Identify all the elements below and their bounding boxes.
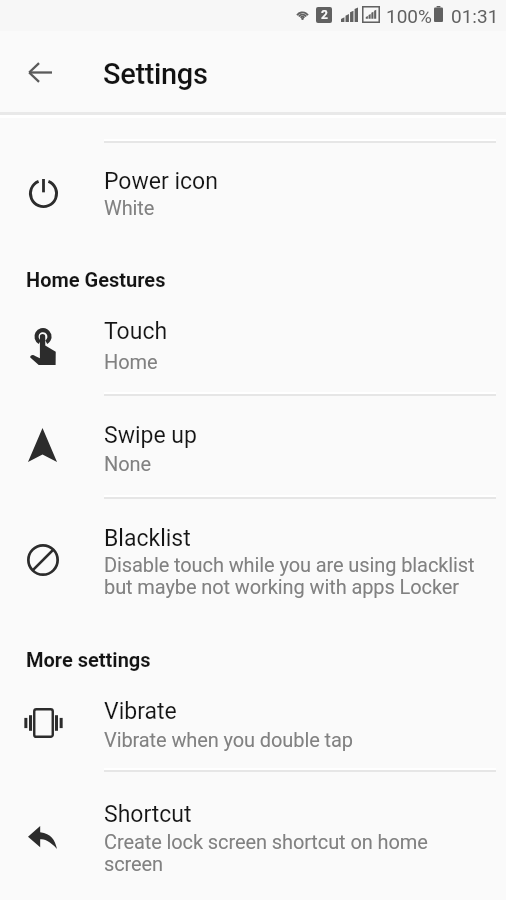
staticText: 100% <box>386 5 432 27</box>
button[interactable] <box>0 770 506 890</box>
staticText: White <box>104 196 484 219</box>
staticText: Home Gestures <box>26 268 166 291</box>
staticText: 01:31 <box>451 5 499 27</box>
staticText: More settings <box>26 648 151 671</box>
staticText: Power icon <box>104 168 218 195</box>
button[interactable] <box>0 680 506 769</box>
staticText: Disable touch while you are using blackl… <box>104 553 484 599</box>
staticText: Create lock screen shortcut on home scre… <box>104 830 484 876</box>
staticText: 2 <box>321 8 328 22</box>
staticText: Settings <box>103 57 208 91</box>
staticText: Touch <box>104 318 168 345</box>
button[interactable] <box>0 393 506 499</box>
staticText: Home <box>104 350 484 373</box>
staticText: Blacklist <box>104 525 191 552</box>
staticText: Vibrate <box>104 698 177 725</box>
staticText: Shortcut <box>104 801 192 828</box>
button[interactable] <box>0 141 506 240</box>
button[interactable] <box>0 300 506 392</box>
staticText: None <box>104 452 484 475</box>
staticText: Vibrate when you double tap <box>104 728 484 751</box>
button[interactable]: Back <box>14 46 66 98</box>
button[interactable] <box>0 500 506 630</box>
staticText: Swipe up <box>104 422 197 449</box>
